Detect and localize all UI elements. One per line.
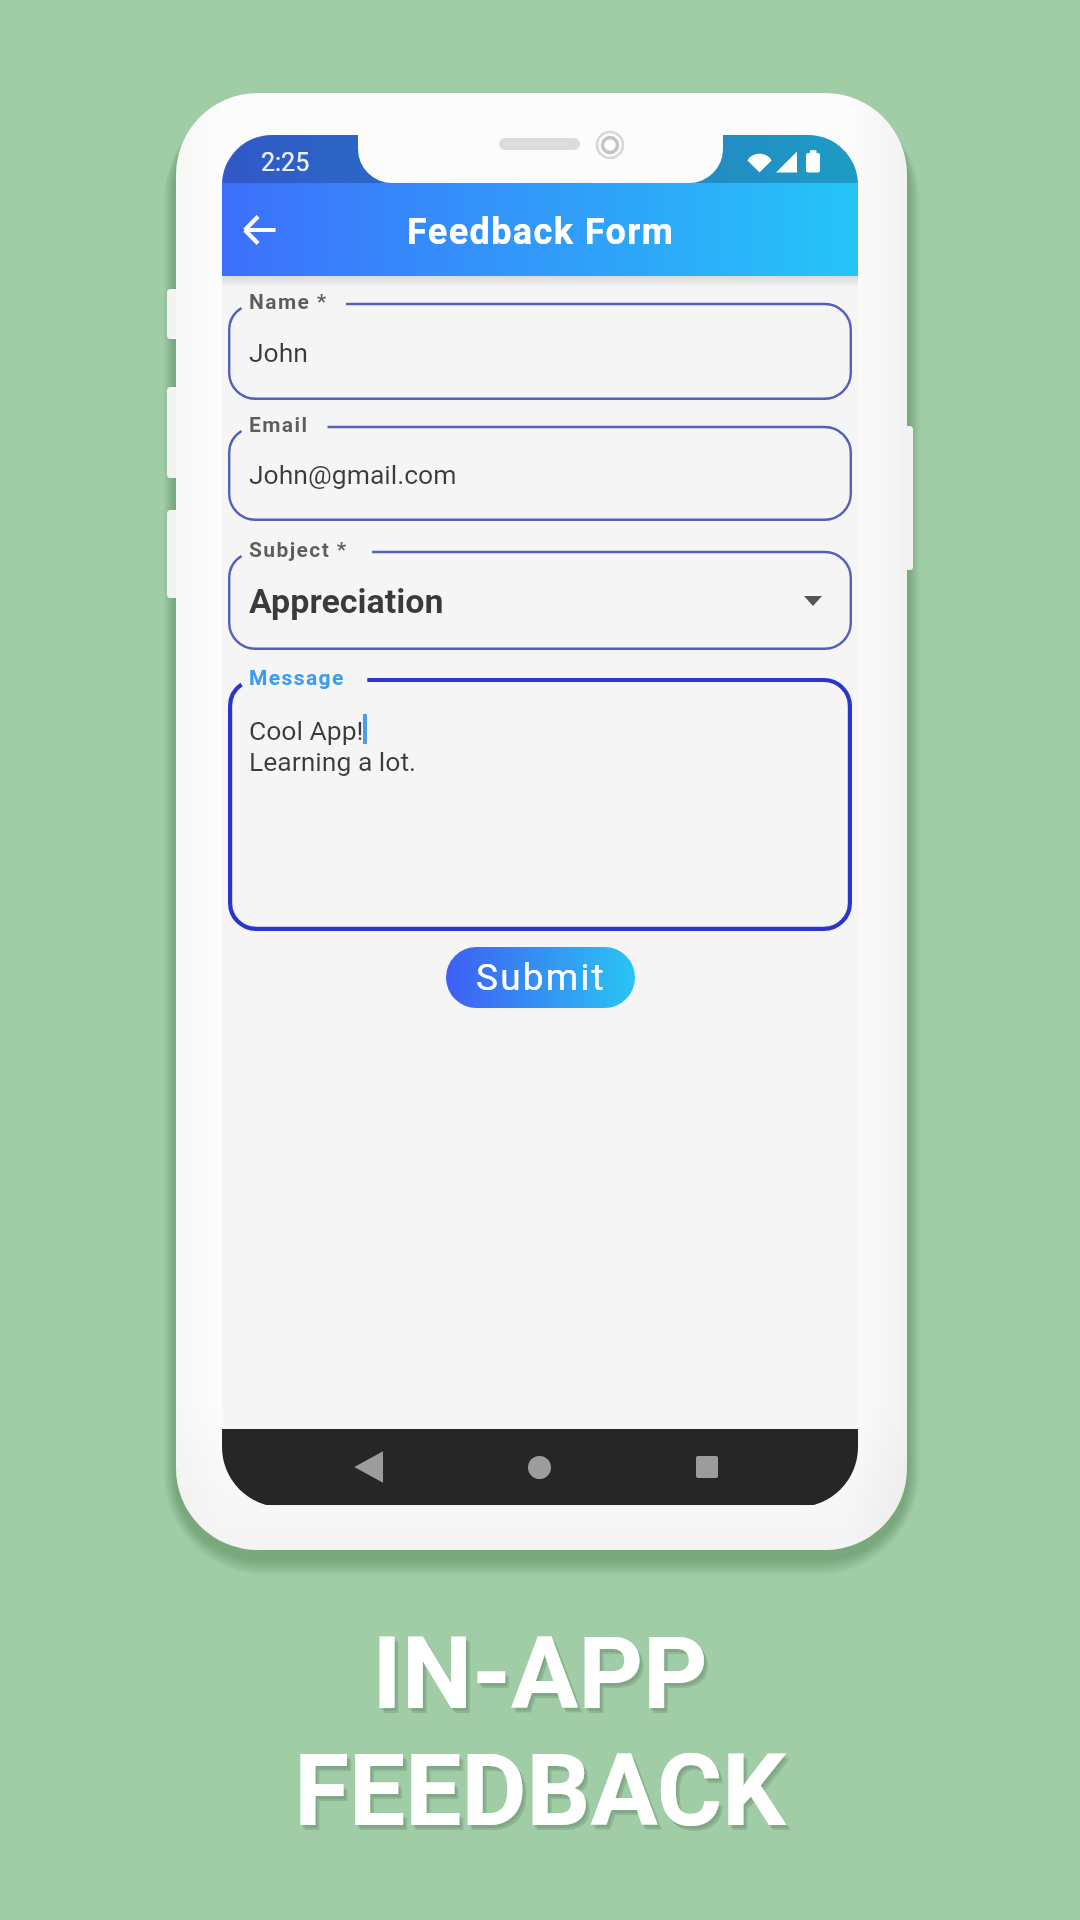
- staticText: FEEDBACK: [296, 1735, 788, 1852]
- button[interactable]: Name *: [228, 293, 852, 400]
- button[interactable]: Back: [334, 1431, 406, 1503]
- staticText: FEEDBACK: [298, 1737, 790, 1854]
- button[interactable]: Home: [503, 1431, 575, 1503]
- staticText: John@gmail.com: [249, 459, 457, 490]
- button[interactable]: Recents: [671, 1431, 743, 1503]
- staticText: John: [249, 337, 308, 368]
- staticText: Submit: [476, 956, 606, 999]
- button[interactable]: Subject *: [228, 541, 852, 650]
- staticText: IN-APP: [376, 1620, 712, 1737]
- staticText: Cool App! Learning a lot.: [249, 715, 417, 777]
- staticText: Email: [249, 413, 309, 438]
- button[interactable]: Email: [228, 416, 852, 521]
- staticText: Appreciation: [249, 581, 444, 621]
- button[interactable]: Back: [224, 194, 296, 266]
- staticText: FEEDBACK: [294, 1732, 786, 1849]
- staticText: IN-APP: [374, 1618, 710, 1735]
- button[interactable]: Message: [228, 669, 852, 931]
- staticText: Subject *: [249, 538, 348, 563]
- staticText: 2:25: [261, 148, 310, 177]
- staticText: Feedback Form: [407, 211, 675, 253]
- staticText: Message: [249, 666, 345, 691]
- button[interactable]: Submit: [446, 947, 635, 1008]
- staticText: Name *: [249, 290, 328, 315]
- staticText: IN-APP: [372, 1615, 708, 1732]
